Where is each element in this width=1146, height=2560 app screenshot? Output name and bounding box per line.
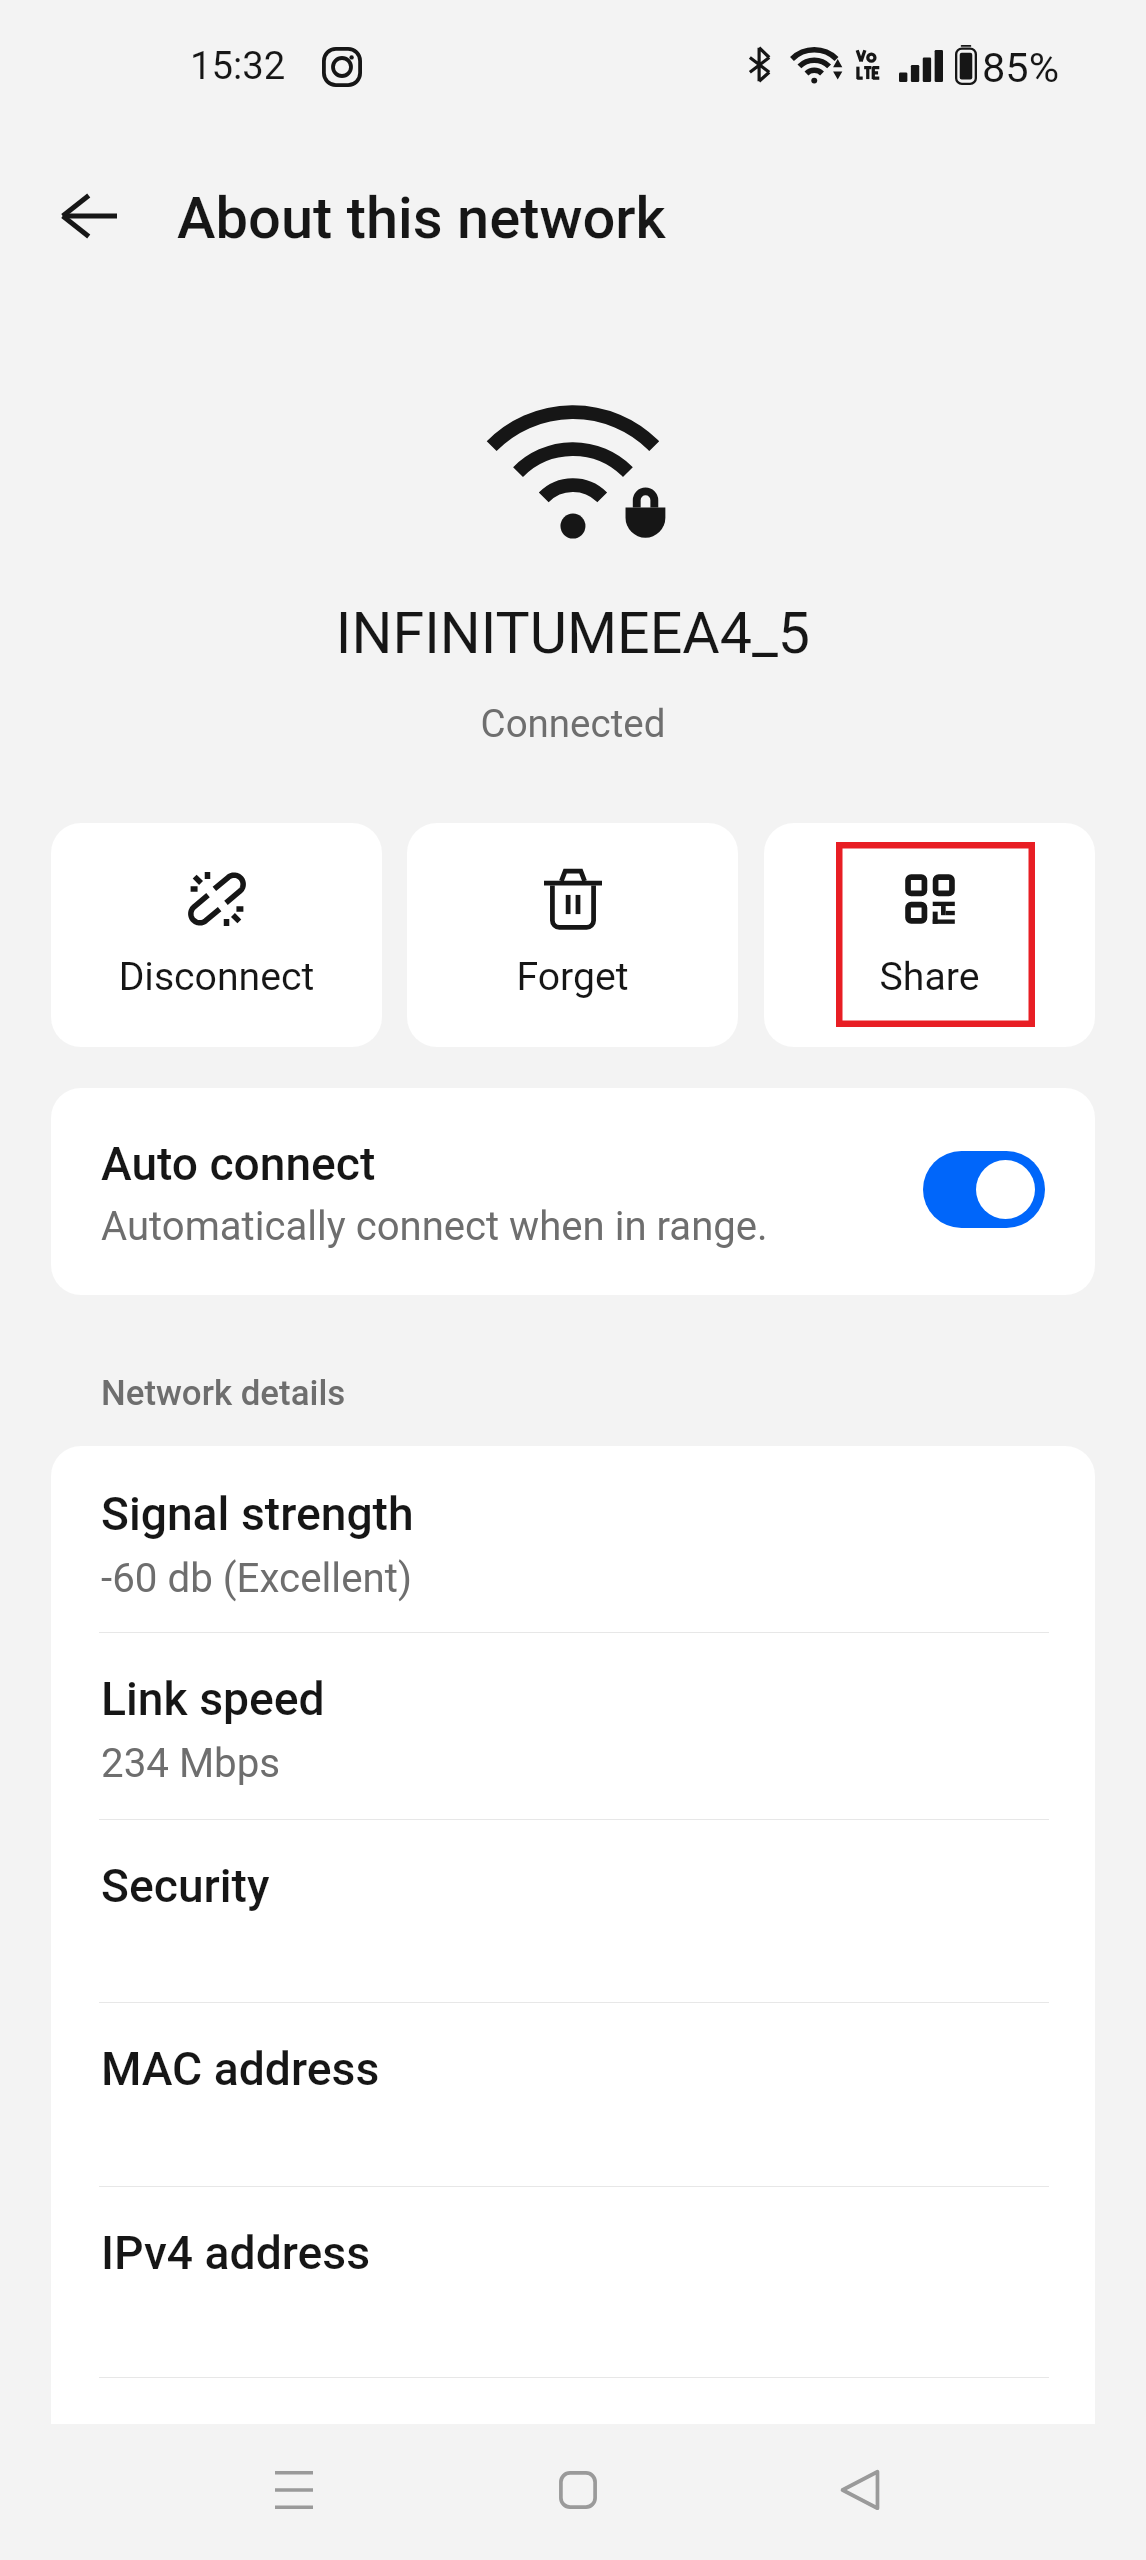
staticText: Share (764, 954, 1095, 1000)
button[interactable]: Auto connect (923, 1151, 1045, 1228)
button[interactable]: Recent apps (246, 2442, 342, 2538)
button[interactable]: Back (812, 2442, 908, 2538)
button[interactable]: Security (51, 1819, 1095, 2002)
button[interactable]: IPv4 address (51, 2186, 1095, 2377)
staticText: -60 db (Excellent) (101, 1555, 412, 1602)
staticText: Auto connect (101, 1137, 376, 1191)
button[interactable]: Link speed (51, 1632, 1095, 1819)
button[interactable]: Forget (407, 823, 738, 1047)
staticText: Forget (407, 954, 738, 1000)
button[interactable]: MAC address (51, 2002, 1095, 2186)
button[interactable]: Signal strength (51, 1446, 1095, 1632)
button[interactable]: Disconnect (51, 823, 382, 1047)
staticText: INFINITUMEEA4_5 (0, 600, 1146, 667)
staticText: Signal strength (101, 1487, 414, 1541)
button[interactable]: Share (764, 823, 1095, 1047)
staticText: MAC address (101, 2042, 380, 2096)
staticText: Link speed (101, 1672, 325, 1726)
staticText: 234 Mbps (101, 1740, 281, 1787)
staticText: 15:32 (190, 43, 286, 88)
staticText: Connected (0, 701, 1146, 746)
staticText: Automatically connect when in range. (101, 1203, 768, 1250)
staticText: Network details (101, 1373, 346, 1414)
staticText: IPv4 address (101, 2226, 371, 2280)
staticText: Security (101, 1859, 270, 1913)
staticText: 85% (982, 43, 1060, 92)
button[interactable]: Auto connect (51, 1088, 1095, 1295)
staticText: Disconnect (51, 954, 382, 1000)
staticText: About this network (177, 184, 666, 252)
button[interactable]: Back (53, 180, 125, 252)
button[interactable]: Home (530, 2442, 626, 2538)
